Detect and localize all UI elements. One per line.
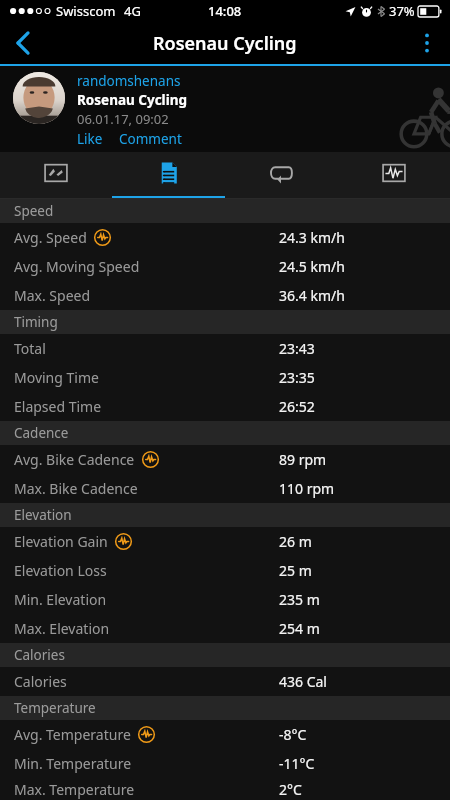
button[interactable]: Max. Bike Cadence [0, 474, 450, 503]
button[interactable]: Elapsed Time [0, 392, 450, 421]
button[interactable]: Avg. Moving Speed [0, 252, 450, 281]
staticText: Max. Bike Cadence [14, 479, 138, 498]
staticText: Elevation Gain [14, 532, 108, 551]
button[interactable]: Min. Temperature [0, 749, 450, 778]
button[interactable]: Laps [225, 152, 337, 199]
button[interactable]: Max. Elevation [0, 614, 450, 643]
staticText: Elapsed Time [14, 397, 102, 416]
staticText: Elevation Loss [14, 561, 107, 580]
staticText: 25 m [279, 561, 312, 580]
staticText: Rosenau Cycling [77, 91, 187, 109]
button[interactable]: More options [404, 22, 450, 64]
button[interactable]: Avg. Temperature [0, 720, 450, 749]
staticText: 24.3 km/h [279, 228, 345, 247]
staticText: Avg. Bike Cadence [14, 450, 135, 469]
staticText: Total [14, 339, 46, 358]
staticText: 14:08 [208, 2, 242, 20]
staticText: 26 m [279, 532, 312, 551]
staticText: Elevation [14, 506, 72, 524]
button[interactable]: Moving Time [0, 363, 450, 392]
staticText: Comment [119, 130, 182, 148]
button[interactable]: Back [0, 22, 46, 64]
button[interactable]: Calories [0, 667, 450, 696]
staticText: 23:35 [279, 368, 315, 387]
staticText: 2°C [279, 780, 302, 799]
staticText: Like [77, 130, 103, 148]
button[interactable]: Min. Elevation [0, 585, 450, 614]
button[interactable]: Max. Speed [0, 281, 450, 310]
staticText: 23:43 [279, 339, 315, 358]
staticText: 235 m [279, 590, 320, 609]
staticText: 37% [389, 2, 415, 20]
button[interactable]: Comment [119, 130, 182, 148]
staticText: Max. Temperature [14, 780, 135, 799]
button[interactable]: Avg. Speed [0, 223, 450, 252]
staticText: Min. Temperature [14, 754, 132, 773]
staticText: Min. Elevation [14, 590, 107, 609]
staticText: Max. Elevation [14, 619, 110, 638]
staticText: Speed [14, 202, 54, 220]
staticText: Swisscom [56, 2, 116, 20]
staticText: 4G [124, 2, 141, 20]
staticText: 436 Cal [279, 672, 327, 691]
staticText: Temperature [14, 699, 96, 717]
staticText: Calories [14, 672, 67, 691]
staticText: 26:52 [279, 397, 315, 416]
staticText: Rosenau Cycling [153, 31, 297, 56]
staticText: Moving Time [14, 368, 99, 387]
staticText: randomshenans [77, 72, 181, 90]
button[interactable]: Details [113, 152, 225, 199]
staticText: 06.01.17, 09:02 [77, 110, 169, 128]
staticText: Cadence [14, 424, 69, 442]
staticText: 254 m [279, 619, 320, 638]
staticText: Avg. Moving Speed [14, 257, 140, 276]
staticText: 89 rpm [279, 450, 327, 469]
staticText: Timing [14, 313, 58, 331]
button[interactable]: Elevation Gain [0, 527, 450, 556]
button[interactable]: Like [77, 130, 103, 148]
staticText: 110 rpm [279, 479, 335, 498]
button[interactable]: Max. Temperature [0, 778, 450, 800]
staticText: Avg. Speed [14, 228, 87, 247]
button[interactable]: Map [0, 152, 112, 199]
staticText: Calories [14, 646, 65, 664]
button[interactable]: Graphs [338, 152, 450, 199]
button[interactable]: Profile photo [13, 72, 65, 124]
button[interactable]: Avg. Bike Cadence [0, 445, 450, 474]
staticText: Avg. Temperature [14, 725, 131, 744]
staticText: 24.5 km/h [279, 257, 345, 276]
staticText: -8°C [279, 725, 307, 744]
staticText: 36.4 km/h [279, 286, 345, 305]
staticText: -11°C [279, 754, 315, 773]
button[interactable]: Total [0, 334, 450, 363]
staticText: Max. Speed [14, 286, 91, 305]
button[interactable]: Elevation Loss [0, 556, 450, 585]
